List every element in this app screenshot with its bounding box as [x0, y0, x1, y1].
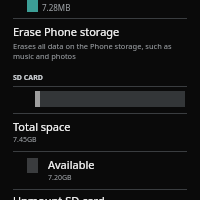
staticText: 7.28MB: [42, 2, 71, 13]
button[interactable]: Erase Phone storage: [0, 19, 200, 67]
staticText: Unmount SD card: [13, 193, 105, 200]
button[interactable]: Total space: [0, 114, 200, 150]
staticText: Erase Phone storage: [13, 24, 120, 39]
staticText: 7.45GB: [13, 135, 37, 145]
staticText: SD CARD: [13, 73, 43, 83]
button[interactable]: Unmount SD card: [0, 190, 200, 200]
button[interactable]: Available: [0, 152, 200, 188]
button[interactable]: 7.28MB: [0, 0, 200, 18]
staticText: Available: [48, 157, 95, 172]
staticText: 7.20GB: [48, 173, 72, 183]
staticText: Total space: [13, 119, 71, 134]
staticText: Erases all data on the Phone storage, su…: [13, 41, 187, 61]
